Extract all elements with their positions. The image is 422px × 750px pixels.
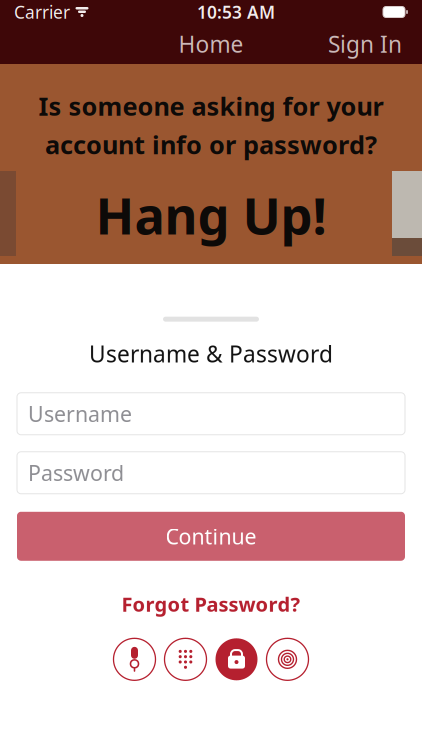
staticText: Continue [165, 522, 256, 550]
staticText: 10:53 AM [197, 0, 275, 23]
staticText: Username [28, 400, 132, 428]
button[interactable]: Password [0, 452, 422, 494]
button[interactable]: Continue [0, 512, 422, 561]
button[interactable]: Keypad [164, 638, 206, 680]
staticText: account info or password? [45, 128, 377, 161]
button[interactable]: Forgot Password? [111, 585, 310, 623]
staticText: Forgot Password? [121, 591, 300, 617]
staticText: Username & Password [89, 339, 333, 369]
staticText: Carrier [14, 0, 70, 23]
staticText: Hang Up! [95, 181, 326, 249]
staticText: Is someone asking for your [38, 89, 383, 123]
button[interactable]: Sign In [322, 23, 408, 65]
staticText: Home [178, 29, 243, 59]
button[interactable]: Username [0, 393, 422, 435]
button[interactable]: Voice [113, 638, 155, 680]
staticText: Password [28, 459, 124, 487]
button[interactable]: Password [215, 638, 257, 680]
button[interactable]: Home [178, 29, 243, 59]
button[interactable]: Fingerprint [266, 638, 308, 680]
staticText: Sign In [328, 29, 402, 59]
